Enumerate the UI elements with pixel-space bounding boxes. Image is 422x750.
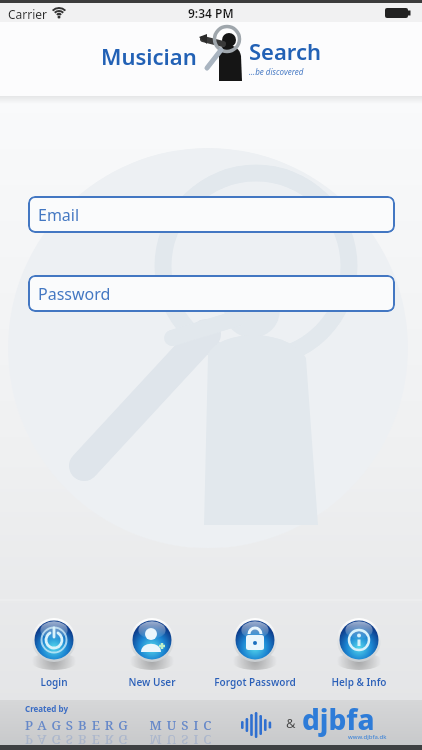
staticText: ...be discovered	[249, 66, 304, 77]
button[interactable]: New User	[104, 613, 200, 689]
button[interactable]: Password	[28, 275, 395, 312]
staticText: djbfa	[302, 700, 375, 738]
staticText: Carrier	[8, 6, 48, 22]
button[interactable]: Forgot Password	[207, 613, 303, 689]
staticText: Created by	[25, 703, 68, 714]
staticText: www.djbfa.dk	[348, 733, 387, 741]
staticText: PAGSBERG MUSIC	[25, 716, 217, 734]
staticText: Musician	[101, 41, 197, 71]
button[interactable]: Login	[6, 613, 102, 689]
staticText: Help & Info	[311, 675, 407, 689]
staticText: 9:34 PM	[188, 5, 234, 21]
staticText: New User	[104, 675, 200, 689]
button[interactable]: Email	[28, 196, 395, 233]
staticText: Forgot Password	[207, 675, 303, 689]
button[interactable]: Help & Info	[311, 613, 407, 689]
staticText: Email	[38, 204, 80, 226]
staticText: Password	[38, 283, 111, 305]
staticText: &	[286, 714, 296, 732]
staticText: PAGSBERG MUSIC	[25, 731, 217, 749]
staticText: Login	[6, 675, 102, 689]
staticText: Search	[249, 36, 322, 66]
